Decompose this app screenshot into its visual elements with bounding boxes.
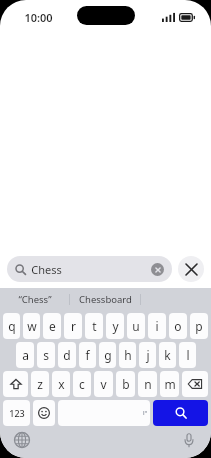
staticText: r xyxy=(71,318,76,334)
button[interactable]: e xyxy=(43,313,61,339)
button[interactable]: z xyxy=(31,371,49,397)
button[interactable]: b xyxy=(116,371,135,397)
staticText: c xyxy=(79,376,85,392)
button[interactable]: Shift xyxy=(3,371,28,397)
staticText: Chess xyxy=(31,262,62,277)
button[interactable]: y xyxy=(106,313,124,339)
staticText: u xyxy=(132,318,140,334)
button[interactable]: t xyxy=(85,313,103,339)
button[interactable]: j xyxy=(139,342,156,368)
staticText: f xyxy=(85,347,90,363)
button[interactable]: d xyxy=(58,342,76,368)
button[interactable]: n xyxy=(138,371,157,397)
staticText: a xyxy=(22,347,29,363)
staticText: i xyxy=(155,318,159,334)
button[interactable]: m xyxy=(160,371,179,397)
staticText: e xyxy=(49,318,56,334)
button[interactable]: l xyxy=(179,342,196,368)
button[interactable]: Backspace xyxy=(182,371,208,397)
button[interactable]: a xyxy=(16,342,34,368)
button[interactable]: k xyxy=(159,342,176,368)
button[interactable]: Search xyxy=(153,400,208,426)
staticText: z xyxy=(37,376,43,392)
button[interactable]: w xyxy=(23,313,40,339)
staticText: l xyxy=(186,347,190,363)
staticText: h xyxy=(124,347,132,363)
staticText: v xyxy=(100,376,107,392)
staticText: p xyxy=(195,318,203,334)
button[interactable]: Chess xyxy=(7,256,172,282)
staticText: s xyxy=(43,347,49,363)
button[interactable]: Space xyxy=(58,400,150,426)
staticText: y xyxy=(112,318,119,334)
staticText: n xyxy=(144,376,152,392)
staticText: g xyxy=(104,347,112,363)
button[interactable]: h xyxy=(119,342,136,368)
staticText: 123 xyxy=(9,407,25,419)
button[interactable]: q xyxy=(3,313,20,339)
button[interactable]: c xyxy=(73,371,91,397)
staticText: q xyxy=(8,318,16,334)
staticText: m xyxy=(164,376,176,392)
button[interactable]: p xyxy=(190,313,208,339)
button[interactable]: s xyxy=(37,342,55,368)
button[interactable]: “Chess” xyxy=(0,288,69,311)
button[interactable]: r xyxy=(64,313,82,339)
button[interactable]: g xyxy=(99,342,116,368)
button[interactable]: Dictation xyxy=(178,429,200,451)
button[interactable]: Emoji xyxy=(33,400,55,426)
button[interactable]: Chessboard xyxy=(70,288,140,311)
button[interactable]: u xyxy=(127,313,145,339)
button[interactable]: v xyxy=(94,371,113,397)
staticText: 10:00 xyxy=(24,10,53,25)
staticText: “Chess” xyxy=(18,293,52,306)
staticText: Chessboard xyxy=(79,293,132,306)
button[interactable]: f xyxy=(79,342,96,368)
button[interactable]: Cancel search xyxy=(178,256,204,282)
staticText: o xyxy=(174,318,182,334)
staticText: t xyxy=(92,318,97,334)
button[interactable]: o xyxy=(169,313,187,339)
button[interactable]: Switch keyboard language xyxy=(11,429,33,451)
staticText: x xyxy=(58,376,65,392)
staticText: w xyxy=(27,318,37,334)
button[interactable]: Clear text xyxy=(151,263,164,276)
button[interactable]: i xyxy=(148,313,166,339)
button[interactable]: 123 xyxy=(3,400,30,426)
staticText: k xyxy=(164,347,171,363)
staticText: d xyxy=(63,347,71,363)
staticText: b xyxy=(122,376,130,392)
staticText: j xyxy=(146,347,150,363)
button[interactable]: x xyxy=(52,371,70,397)
